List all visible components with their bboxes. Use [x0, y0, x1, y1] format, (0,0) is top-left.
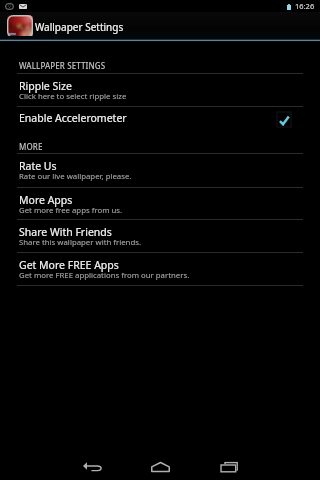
button[interactable]: Ripple Size: [0, 74, 320, 107]
staticText: 16:26: [295, 1, 315, 11]
staticText: Rate Us: [19, 159, 57, 173]
button[interactable]: More Apps: [0, 188, 320, 220]
staticText: Wallpaper Settings: [35, 20, 124, 34]
button[interactable]: Home: [138, 442, 183, 480]
staticText: Get more free apps from us.: [19, 205, 123, 216]
staticText: Ripple Size: [19, 79, 72, 93]
staticText: Rate our live wallpaper, please.: [19, 171, 132, 182]
staticText: Get more FREE applications from our part…: [19, 270, 190, 281]
staticText: Share With Friends: [19, 225, 112, 239]
button[interactable]: Share With Friends: [0, 220, 320, 253]
button[interactable]: Recent apps: [207, 442, 252, 480]
staticText: More Apps: [19, 193, 73, 207]
staticText: MORE: [19, 141, 43, 152]
staticText: Click here to select ripple size: [19, 91, 127, 102]
button[interactable]: Rate Us: [0, 154, 320, 188]
staticText: Get More FREE Apps: [19, 258, 119, 272]
button[interactable]: Back: [70, 442, 115, 480]
button[interactable]: Enable Accelerometer: [0, 107, 320, 137]
staticText: Share this wallpaper with friends.: [19, 237, 142, 248]
button[interactable]: Get More FREE Apps: [0, 253, 320, 286]
staticText: Enable Accelerometer: [19, 111, 127, 125]
staticText: WALLPAPER SETTINGS: [19, 60, 106, 71]
